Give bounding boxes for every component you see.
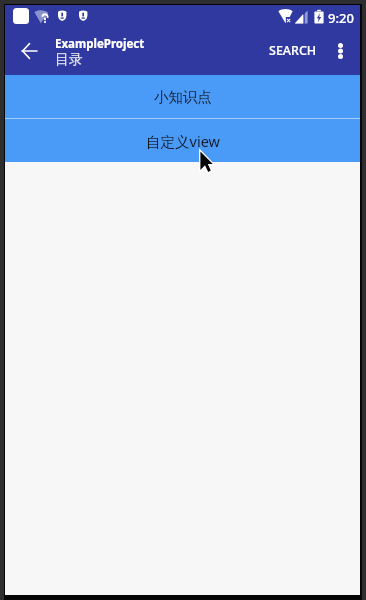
staticText: 目录 <box>55 51 83 69</box>
staticText: 9:20 <box>328 9 354 27</box>
staticText: SEARCH <box>269 42 317 59</box>
staticText: ExampleProject <box>55 36 145 52</box>
button[interactable]: More options <box>329 26 360 75</box>
button[interactable]: Back <box>5 26 52 75</box>
button[interactable]: 自定义view <box>5 119 360 162</box>
staticText: 小知识点 <box>154 88 212 106</box>
button[interactable]: SEARCH <box>260 28 329 73</box>
staticText: 自定义view <box>146 131 220 151</box>
button[interactable]: 小知识点 <box>5 75 360 118</box>
